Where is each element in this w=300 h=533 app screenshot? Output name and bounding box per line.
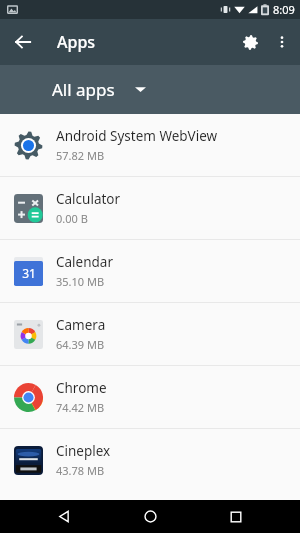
- button[interactable]: Chrome: [0, 366, 300, 428]
- staticText: All apps: [52, 78, 115, 101]
- button[interactable]: Settings: [233, 25, 267, 59]
- staticText: 35.10 MB: [56, 274, 105, 289]
- staticText: 8:09: [273, 2, 295, 17]
- staticText: 31: [22, 265, 36, 281]
- button[interactable]: Home: [128, 500, 172, 533]
- button[interactable]: Recent apps: [214, 500, 258, 533]
- staticText: Calendar: [56, 253, 113, 271]
- staticText: Camera: [56, 316, 106, 334]
- button[interactable]: Cineplex: [0, 429, 300, 491]
- staticText: Calculator: [56, 190, 121, 208]
- button[interactable]: All apps: [52, 78, 146, 101]
- button[interactable]: More options: [267, 27, 297, 57]
- staticText: 57.82 MB: [56, 148, 105, 163]
- button[interactable]: Android System WebView: [0, 114, 300, 176]
- button[interactable]: Calculator: [0, 177, 300, 239]
- staticText: Cineplex: [56, 442, 111, 460]
- button[interactable]: Back: [42, 500, 86, 533]
- button[interactable]: 31: [0, 240, 300, 302]
- staticText: Chrome: [56, 379, 107, 397]
- staticText: Android System WebView: [56, 127, 218, 145]
- staticText: 74.42 MB: [56, 400, 105, 415]
- button[interactable]: Back: [5, 24, 41, 60]
- staticText: 0.00 B: [56, 211, 88, 226]
- staticText: 43.78 MB: [56, 463, 105, 478]
- staticText: 64.39 MB: [56, 337, 105, 352]
- staticText: Apps: [57, 31, 96, 53]
- button[interactable]: Camera: [0, 303, 300, 365]
